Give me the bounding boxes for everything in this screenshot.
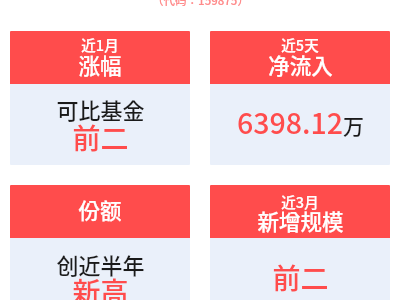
staticText: 可比基金 <box>56 93 145 125</box>
button[interactable]: 近5天净流入 6398.12万 <box>210 31 390 165</box>
button[interactable]: 近3月新增规模 前二 <box>210 185 390 300</box>
staticText: 份额 <box>78 194 122 225</box>
staticText: 净流入 <box>268 49 333 80</box>
staticText: 新增规模 <box>257 205 344 236</box>
staticText: 近3月 <box>281 191 319 212</box>
button[interactable]: 份额 创近半年新高 <box>10 185 190 300</box>
staticText: 6398.12万 <box>237 101 364 142</box>
staticText: （代码：159875） <box>152 0 249 9</box>
button[interactable]: 近1月涨幅 可比基金前二 <box>10 31 190 165</box>
staticText: 近1月 <box>81 34 119 55</box>
staticText: 前二 <box>72 117 129 158</box>
staticText: 新高 <box>72 271 129 300</box>
staticText: 涨幅 <box>78 49 122 80</box>
staticText: 近5天 <box>281 34 319 55</box>
staticText: 创近半年 <box>56 248 145 280</box>
staticText: 前二 <box>272 257 329 298</box>
